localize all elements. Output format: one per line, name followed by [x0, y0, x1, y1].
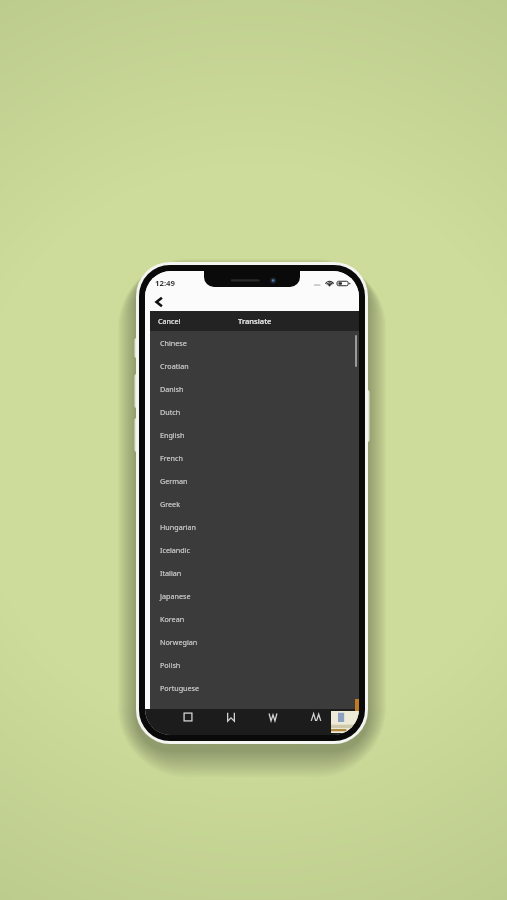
button[interactable]: Portuguese: [150, 676, 359, 699]
button[interactable]: Icelandic: [150, 538, 359, 561]
staticText: Danish: [160, 384, 184, 394]
button[interactable]: Bookmarks: [224, 710, 238, 724]
staticText: Portuguese: [160, 683, 200, 693]
button[interactable]: Hungarian: [150, 515, 359, 538]
staticText: French: [160, 453, 183, 463]
staticText: Japanese: [160, 591, 191, 601]
staticText: Korean: [160, 614, 185, 624]
staticText: Italian: [160, 568, 182, 578]
button[interactable]: Greek: [150, 492, 359, 515]
button[interactable]: French: [150, 446, 359, 469]
staticText: Greek: [160, 499, 181, 509]
button[interactable]: Cancel: [150, 313, 189, 329]
button[interactable]: Norwegian: [150, 630, 359, 653]
staticText: Translate: [238, 316, 272, 326]
button[interactable]: English: [150, 423, 359, 446]
staticText: Norwegian: [160, 637, 198, 647]
button[interactable]: Back: [150, 294, 166, 310]
staticText: Chinese: [160, 338, 187, 348]
button[interactable]: Share: [181, 710, 195, 724]
button[interactable]: Croatian: [150, 354, 359, 377]
button[interactable]: Chinese: [150, 331, 359, 354]
button[interactable]: Korean: [150, 607, 359, 630]
button[interactable]: Text size: [309, 710, 323, 724]
staticText: Croatian: [160, 361, 189, 371]
button[interactable]: Italian: [150, 561, 359, 584]
staticText: Polish: [160, 660, 181, 670]
staticText: 12:49: [155, 278, 176, 289]
staticText: Hungarian: [160, 522, 196, 532]
button[interactable]: Polish: [150, 653, 359, 676]
button[interactable]: Japanese: [150, 584, 359, 607]
staticText: English: [160, 430, 185, 440]
staticText: Dutch: [160, 407, 181, 417]
button[interactable]: Danish: [150, 377, 359, 400]
button[interactable]: Dutch: [150, 400, 359, 423]
button[interactable]: German: [150, 469, 359, 492]
button[interactable]: Tabs: [266, 710, 280, 724]
staticText: Cancel: [158, 316, 181, 326]
staticText: Icelandic: [160, 545, 190, 555]
staticText: German: [160, 476, 188, 486]
